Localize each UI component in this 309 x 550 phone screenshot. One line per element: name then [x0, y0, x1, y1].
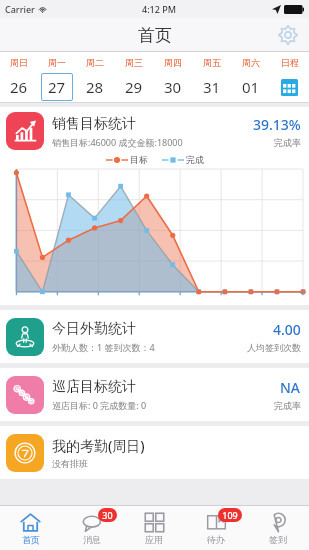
- staticText: 周一: [48, 57, 66, 68]
- staticText: 首页: [22, 534, 40, 545]
- staticText: 完成率: [274, 400, 301, 411]
- staticText: 28: [86, 77, 104, 97]
- staticText: 签到: [269, 534, 287, 545]
- button[interactable]: 签到: [247, 506, 309, 550]
- button[interactable]: 我的考勤(周日): [6, 426, 301, 479]
- button[interactable]: Settings: [275, 22, 301, 48]
- staticText: 巡店目标统计: [52, 378, 136, 396]
- staticText: Carrier: [5, 3, 35, 15]
- staticText: 待办: [207, 534, 225, 545]
- staticText: 销售目标:46000 成交金额:18000: [52, 136, 183, 148]
- staticText: 应用: [145, 534, 163, 545]
- staticText: 完成: [186, 154, 204, 165]
- staticText: 销售目标统计: [52, 115, 136, 133]
- staticText: 消息: [83, 534, 101, 545]
- staticText: 没有排班: [52, 458, 88, 469]
- staticText: 我的考勤(周日): [52, 436, 145, 455]
- staticText: 26: [10, 77, 28, 97]
- button[interactable]: 日程: [270, 72, 309, 102]
- staticText: 39.13%: [253, 115, 301, 134]
- button[interactable]: 今日外勤统计: [6, 310, 301, 363]
- staticText: 27: [48, 77, 66, 97]
- staticText: 4:12 PM: [142, 3, 176, 15]
- button[interactable]: 31: [195, 73, 228, 101]
- staticText: 30: [102, 509, 113, 521]
- staticText: 今日外勤统计: [52, 320, 136, 338]
- staticText: 4.00: [273, 320, 301, 339]
- staticText: 周二: [86, 57, 104, 68]
- staticText: 日程: [281, 57, 299, 68]
- staticText: 109: [222, 509, 238, 521]
- button[interactable]: 26: [3, 73, 35, 101]
- staticText: 完成率: [274, 137, 301, 148]
- button[interactable]: 27: [41, 73, 73, 101]
- staticText: 周五: [203, 57, 221, 68]
- staticText: NA: [280, 378, 301, 397]
- staticText: 30: [164, 77, 182, 97]
- staticText: 周六: [242, 57, 260, 68]
- staticText: 01: [242, 77, 260, 97]
- staticText: 31: [203, 77, 221, 97]
- button[interactable]: 应用: [123, 506, 185, 550]
- button[interactable]: 30: [61, 506, 123, 550]
- staticText: 周四: [164, 57, 182, 68]
- button[interactable]: 29: [117, 73, 150, 101]
- button[interactable]: 30: [156, 73, 189, 101]
- staticText: 人均签到次数: [247, 342, 301, 353]
- button[interactable]: 109: [185, 506, 247, 550]
- staticText: 目标: [130, 154, 148, 165]
- button[interactable]: 销售目标统计: [0, 107, 309, 305]
- staticText: 29: [125, 77, 143, 97]
- staticText: 周三: [125, 57, 143, 68]
- staticText: 首页: [138, 25, 172, 46]
- staticText: 巡店目标: 0 完成数量: 0: [52, 399, 147, 411]
- staticText: 外勤人数：1 签到次数：4: [52, 341, 155, 353]
- button[interactable]: 01: [234, 73, 267, 101]
- button[interactable]: 28: [79, 73, 111, 101]
- button[interactable]: 巡店目标统计: [6, 368, 301, 421]
- staticText: 周日: [10, 57, 28, 68]
- button[interactable]: 首页: [0, 506, 61, 550]
